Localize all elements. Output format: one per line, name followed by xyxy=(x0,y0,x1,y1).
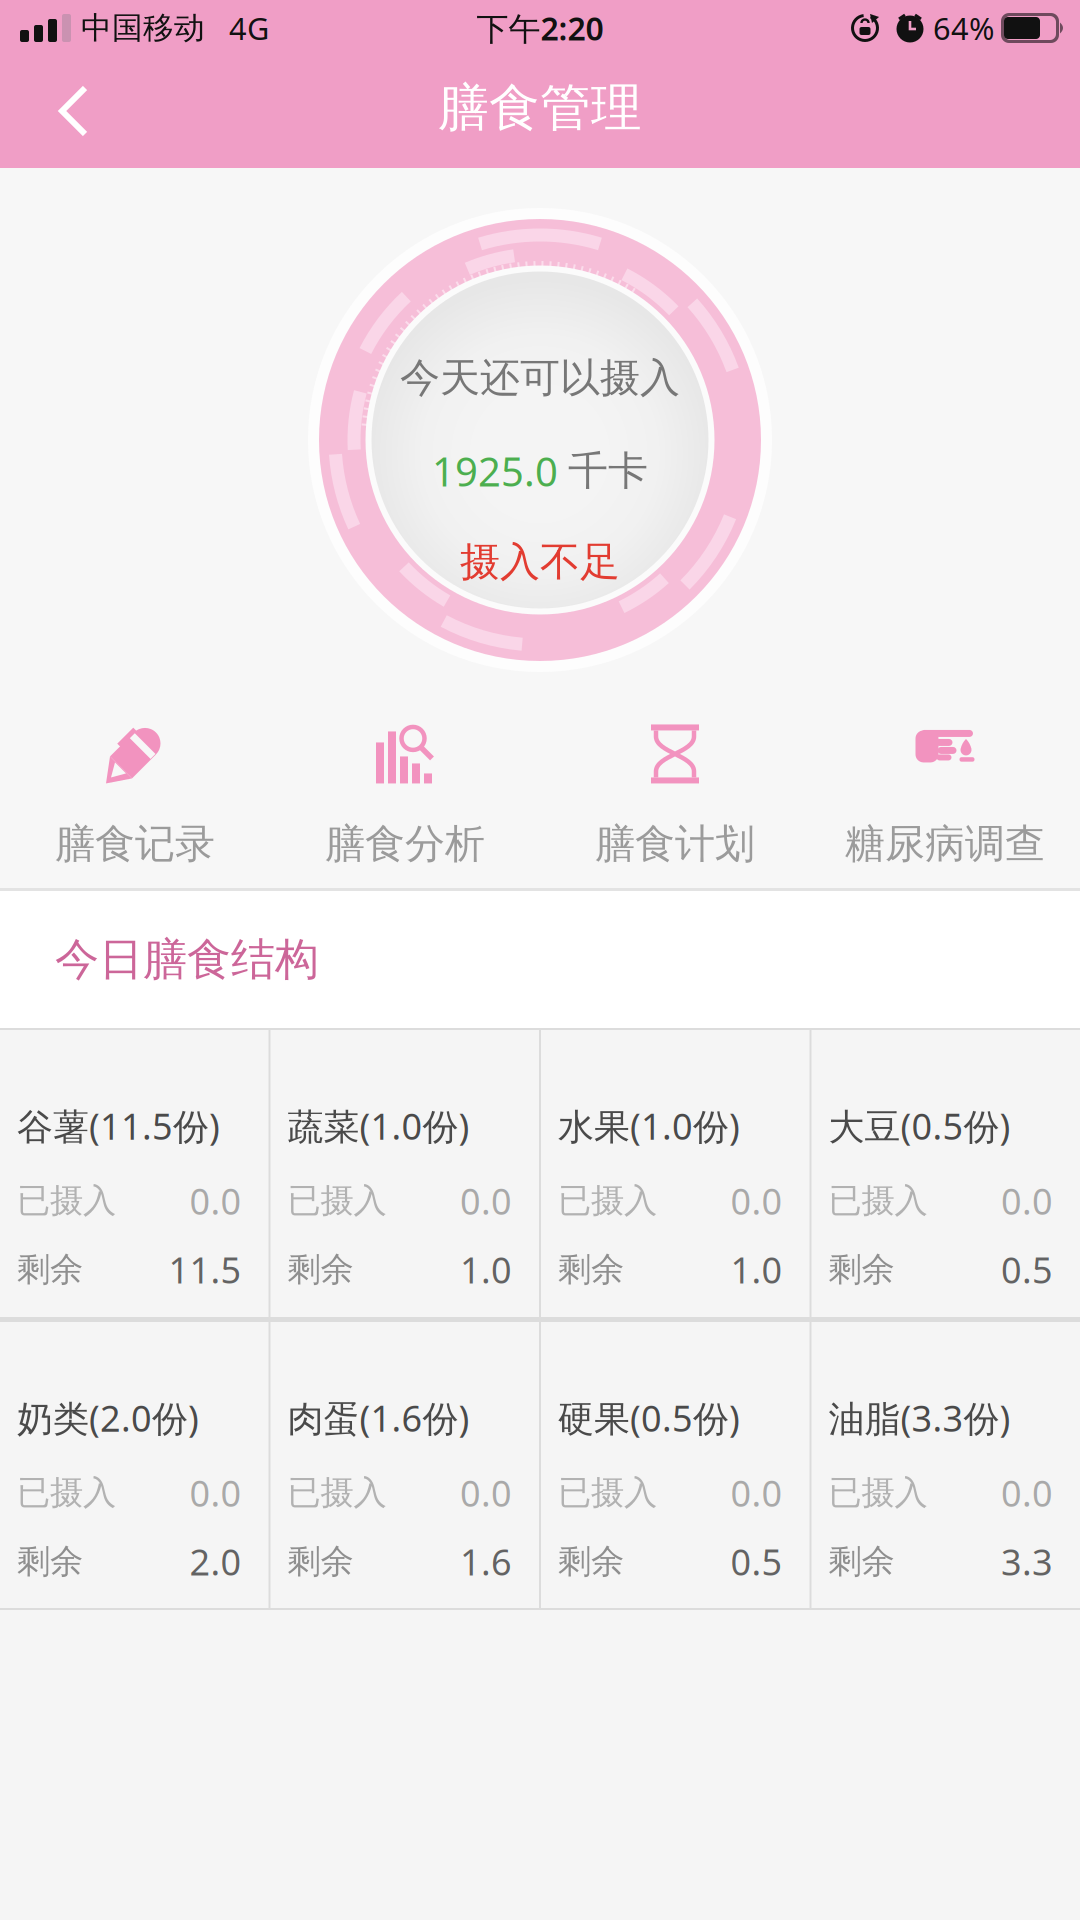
staticText: 油脂(3.3份) xyxy=(828,1394,1010,1442)
staticText: 奶类(2.0份) xyxy=(17,1394,199,1442)
staticText: 1.6 xyxy=(460,1538,512,1585)
staticText: 0.5 xyxy=(1001,1246,1053,1293)
staticText: 膳食记录 xyxy=(55,819,215,868)
staticText: 已摄入 xyxy=(828,1180,927,1221)
staticText: 剩余 xyxy=(287,1541,353,1582)
staticText: 已摄入 xyxy=(17,1180,116,1221)
staticText: 下午2:20 xyxy=(476,7,603,49)
staticText: 0.0 xyxy=(189,1177,241,1225)
staticText: 膳食计划 xyxy=(595,819,755,868)
staticText: 剩余 xyxy=(287,1249,353,1290)
staticText: 0.0 xyxy=(730,1469,782,1517)
staticText: 剩余 xyxy=(17,1249,83,1290)
staticText: 1925.0 xyxy=(432,444,558,497)
staticText: 水果(1.0份) xyxy=(558,1102,740,1150)
staticText: 1.0 xyxy=(730,1246,782,1293)
staticText: 已摄入 xyxy=(558,1472,657,1513)
staticText: 膳食分析 xyxy=(325,819,485,868)
button[interactable]: 返回 xyxy=(0,60,89,164)
staticText: 谷薯(11.5份) xyxy=(17,1102,220,1150)
staticText: 摄入不足 xyxy=(460,537,620,586)
staticText: 蔬菜(1.0份) xyxy=(287,1102,469,1150)
staticText: 已摄入 xyxy=(828,1472,927,1513)
staticText: 大豆(0.5份) xyxy=(828,1102,1010,1150)
staticText: 中国移动 xyxy=(81,9,205,47)
staticText: 千卡 xyxy=(568,446,648,495)
button[interactable]: 糖尿病调查 xyxy=(810,709,1080,868)
staticText: 剩余 xyxy=(828,1249,894,1290)
staticText: 膳食管理 xyxy=(438,77,642,139)
staticText: 剩余 xyxy=(17,1541,83,1582)
staticText: 0.0 xyxy=(460,1469,512,1517)
staticText: 已摄入 xyxy=(287,1472,386,1513)
staticText: 剩余 xyxy=(558,1249,624,1290)
staticText: 0.0 xyxy=(1001,1469,1053,1517)
staticText: 0.0 xyxy=(1001,1177,1053,1225)
staticText: 今日膳食结构 xyxy=(55,932,319,986)
staticText: 2.0 xyxy=(189,1538,241,1585)
staticText: 4G xyxy=(229,8,269,48)
staticText: 今天还可以摄入 xyxy=(400,353,680,402)
staticText: 已摄入 xyxy=(17,1472,116,1513)
staticText: 0.0 xyxy=(189,1469,241,1517)
staticText: 硬果(0.5份) xyxy=(558,1394,740,1442)
staticText: 已摄入 xyxy=(287,1180,386,1221)
staticText: 肉蛋(1.6份) xyxy=(287,1394,469,1442)
staticText: 3.3 xyxy=(1001,1538,1053,1585)
button[interactable]: 膳食分析 xyxy=(270,709,540,868)
staticText: 11.5 xyxy=(168,1246,241,1293)
staticText: 剩余 xyxy=(828,1541,894,1582)
staticText: 0.0 xyxy=(460,1177,512,1225)
staticText: 0.0 xyxy=(730,1177,782,1225)
staticText: 0.5 xyxy=(730,1538,782,1585)
staticText: 已摄入 xyxy=(558,1180,657,1221)
staticText: 64% xyxy=(933,8,994,48)
button[interactable]: 膳食计划 xyxy=(540,709,810,868)
staticText: 剩余 xyxy=(558,1541,624,1582)
button[interactable]: 膳食记录 xyxy=(0,709,270,868)
staticText: 1.0 xyxy=(460,1246,512,1293)
staticText: 糖尿病调查 xyxy=(845,819,1045,868)
